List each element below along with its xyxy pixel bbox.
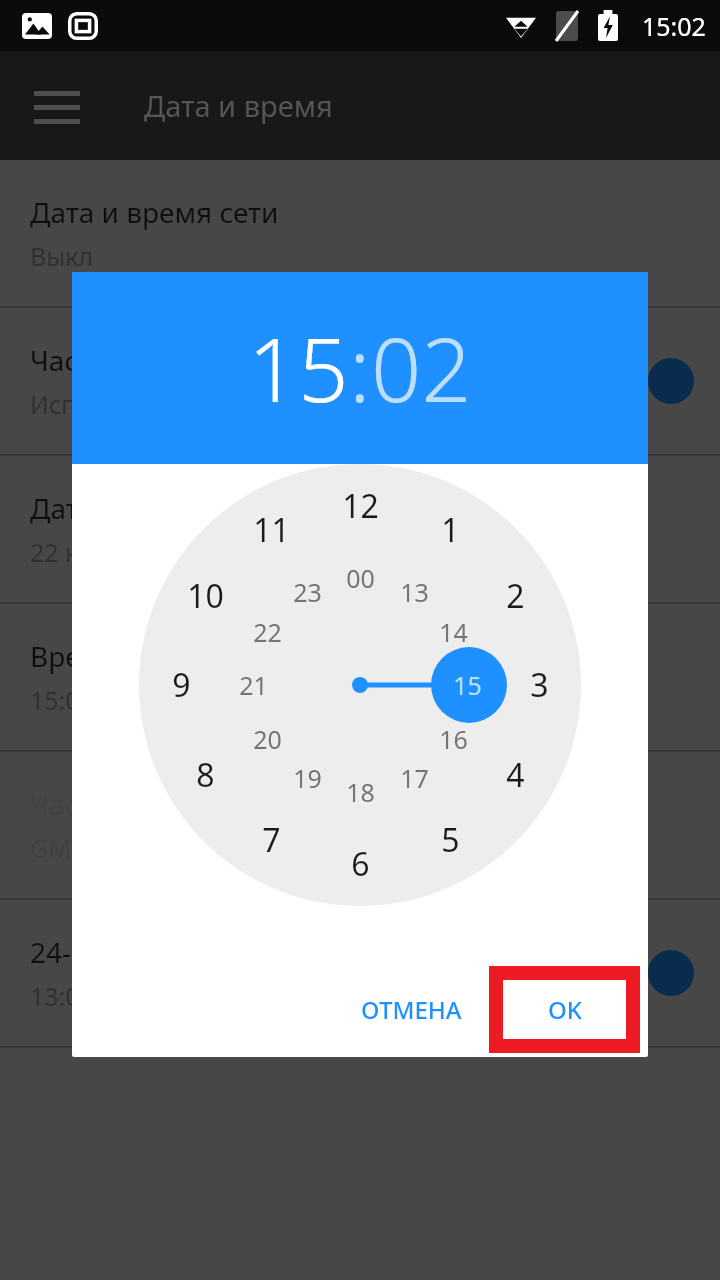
button[interactable]: 00 (330, 558, 390, 598)
staticText: : (349, 308, 371, 428)
staticText: Дата и время (144, 86, 333, 125)
staticText: 22 ноября 2017 (30, 535, 218, 569)
button[interactable]: 5 (418, 816, 482, 864)
button[interactable]: 15 (248, 308, 349, 428)
button[interactable]: 13 (384, 572, 444, 612)
button[interactable]: 19 (277, 758, 337, 798)
button[interactable]: 14 (423, 612, 483, 652)
button[interactable]: 18 (330, 772, 390, 812)
staticText: 00 (346, 561, 375, 595)
staticText: Время (30, 637, 119, 675)
staticText: 15 (453, 668, 482, 702)
button[interactable]: 7 (239, 816, 303, 864)
button[interactable]: 9 (149, 661, 213, 709)
staticText: 15:02 (642, 9, 706, 43)
button[interactable]: 24-часовой формат (0, 900, 720, 1046)
button[interactable]: 8 (173, 751, 237, 799)
button[interactable]: Часовой пояс (0, 752, 720, 898)
staticText: Использовать (30, 387, 200, 421)
staticText: 7 (262, 818, 281, 862)
staticText: 1 (441, 508, 460, 552)
button[interactable]: OK (496, 973, 633, 1046)
button[interactable]: Toggle (648, 950, 694, 996)
staticText: GMT+03:00 (30, 831, 163, 865)
staticText: Часовой пояс (30, 785, 215, 823)
staticText: 19 (293, 761, 322, 795)
staticText: 16 (439, 722, 468, 756)
staticText: 13 (400, 575, 429, 609)
staticText: 2 (506, 574, 525, 618)
staticText: 6 (351, 842, 370, 886)
button[interactable]: 12 (328, 482, 392, 530)
button[interactable]: 2 (483, 572, 547, 620)
button[interactable]: 6 (328, 840, 392, 888)
staticText: 20 (253, 722, 282, 756)
staticText: 5 (441, 818, 460, 862)
button[interactable]: 17 (384, 758, 444, 798)
button[interactable]: Menu (34, 87, 80, 125)
staticText: Дата и время сети (30, 193, 279, 231)
staticText: 14 (439, 615, 468, 649)
staticText: 15 (248, 308, 349, 428)
button[interactable]: 11 (239, 506, 303, 554)
staticText: Дата (30, 489, 95, 527)
staticText: Выкл (30, 239, 94, 273)
button[interactable]: 22 (237, 612, 297, 652)
button[interactable]: 16 (423, 719, 483, 759)
button[interactable]: 20 (237, 719, 297, 759)
staticText: 15:02 (30, 683, 94, 717)
staticText: 3 (530, 663, 549, 707)
button[interactable]: 10 (173, 572, 237, 620)
staticText: Часовой пояс сети (30, 341, 282, 379)
button[interactable]: Дата и время сети (0, 160, 720, 306)
staticText: 22 (253, 615, 282, 649)
staticText: 4 (506, 753, 525, 797)
staticText: 9 (172, 663, 191, 707)
staticText: 10 (187, 574, 224, 618)
button[interactable]: 02 (371, 308, 472, 428)
button[interactable]: 4 (483, 751, 547, 799)
staticText: 02 (371, 308, 472, 428)
button[interactable]: Toggle (648, 358, 694, 404)
button[interactable]: 23 (277, 572, 337, 612)
staticText: OK (548, 993, 582, 1026)
staticText: 23 (293, 575, 322, 609)
button[interactable]: Время (0, 604, 720, 750)
button[interactable]: 21 (223, 665, 283, 705)
staticText: 13:00 (30, 979, 94, 1013)
button[interactable]: Часовой пояс сети (0, 308, 720, 454)
button[interactable]: 3 (507, 661, 571, 709)
staticText: ОТМЕНА (361, 993, 462, 1026)
staticText: 21 (239, 668, 268, 702)
button[interactable]: 15 (437, 665, 497, 705)
staticText: 18 (346, 775, 375, 809)
button[interactable]: Дата (0, 456, 720, 602)
staticText: 12 (342, 484, 379, 528)
staticText: 11 (253, 508, 290, 552)
button[interactable]: ОТМЕНА (345, 977, 478, 1042)
button[interactable]: 1 (418, 506, 482, 554)
staticText: 24-часовой формат (30, 933, 295, 971)
staticText: 17 (400, 761, 429, 795)
staticText: 8 (196, 753, 215, 797)
